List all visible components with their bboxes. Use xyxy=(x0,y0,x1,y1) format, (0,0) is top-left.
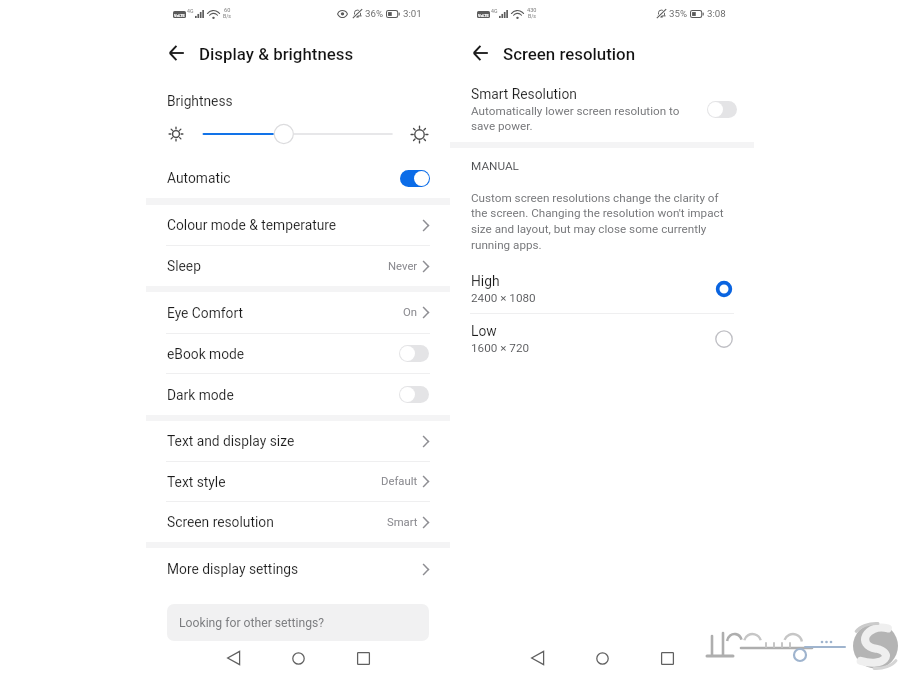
staticText: B/s xyxy=(528,13,537,19)
button[interactable]: Back xyxy=(207,643,259,673)
button[interactable]: Eye Comfort xyxy=(146,292,450,333)
staticText: Text style xyxy=(167,474,226,490)
staticText: 3:01 xyxy=(403,8,422,19)
button[interactable]: Navigate up xyxy=(161,38,191,68)
staticText: Eye Comfort xyxy=(167,305,243,321)
staticText: 35% xyxy=(669,8,687,19)
button[interactable]: Smart Resolution xyxy=(450,80,754,138)
staticText: On xyxy=(403,306,418,319)
button[interactable]: Dark mode xyxy=(146,374,450,415)
button[interactable]: Switch off xyxy=(399,386,429,403)
staticText: Automatically lower screen resolution to… xyxy=(471,104,693,132)
staticText: B/s xyxy=(223,13,232,19)
staticText: Text and display size xyxy=(167,433,295,449)
staticText: Sleep xyxy=(167,258,201,274)
staticText: Smart xyxy=(387,516,418,529)
staticText: 3:08 xyxy=(707,8,726,19)
staticText: Automatic xyxy=(167,170,231,186)
staticText: Low xyxy=(471,323,497,339)
button[interactable]: Recent apps xyxy=(337,643,389,673)
staticText: Custom screen resolutions change the cla… xyxy=(471,191,733,252)
button[interactable]: Text style xyxy=(146,462,450,501)
staticText: MANUAL xyxy=(471,159,519,173)
button[interactable]: Selected xyxy=(714,279,734,299)
staticText: 430 xyxy=(527,7,537,14)
button[interactable]: Sleep xyxy=(146,246,450,286)
staticText: Never xyxy=(388,260,418,273)
staticText: VoLTE xyxy=(478,13,489,17)
staticText: 4G xyxy=(491,8,498,14)
staticText: More display settings xyxy=(167,561,299,577)
button[interactable]: Recent apps xyxy=(641,643,693,673)
button[interactable]: Switch on xyxy=(400,170,430,187)
staticText: High xyxy=(471,273,500,289)
staticText: eBook mode xyxy=(167,346,245,362)
staticText: Looking for other settings? xyxy=(179,616,325,630)
staticText: 4G xyxy=(187,8,194,14)
button[interactable]: More display settings xyxy=(146,548,450,590)
button[interactable]: Text and display size xyxy=(146,421,450,461)
button[interactable]: Automatic xyxy=(146,166,450,190)
staticText: Screen resolution xyxy=(503,44,636,64)
button[interactable]: Home xyxy=(272,643,324,673)
staticText: Screen resolution xyxy=(167,514,274,530)
staticText: 36% xyxy=(365,8,383,19)
button[interactable]: Screen resolution xyxy=(146,502,450,542)
staticText: Default xyxy=(381,475,418,488)
button[interactable]: Colour mode & temperature xyxy=(146,205,450,245)
button[interactable]: Not selected xyxy=(714,329,734,349)
staticText: Display & brightness xyxy=(199,44,354,64)
button[interactable]: Low xyxy=(450,314,754,363)
button[interactable]: Looking for other settings? xyxy=(167,604,429,641)
staticText: Brightness xyxy=(167,93,233,109)
button[interactable]: Switch off xyxy=(707,101,737,118)
staticText: 60 xyxy=(224,7,231,14)
staticText: 1600 × 720 xyxy=(471,341,530,355)
button[interactable]: Navigate up xyxy=(465,38,495,68)
button[interactable]: eBook mode xyxy=(146,334,450,373)
staticText: Smart Resolution xyxy=(471,86,577,102)
staticText: Dark mode xyxy=(167,387,234,403)
button[interactable]: Back xyxy=(511,643,563,673)
button[interactable]: High xyxy=(450,264,754,313)
staticText: 2400 × 1080 xyxy=(471,291,536,305)
staticText: Colour mode & temperature xyxy=(167,217,337,233)
button[interactable]: Home xyxy=(576,643,628,673)
button[interactable]: Switch off xyxy=(399,345,429,362)
staticText: VoLTE xyxy=(174,13,185,17)
